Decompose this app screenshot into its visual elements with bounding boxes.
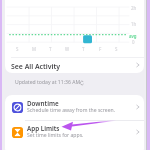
other: See All Activity <box>136 62 140 68</box>
staticText: S <box>115 46 118 52</box>
staticText: M <box>32 46 36 52</box>
staticText: W <box>65 46 70 52</box>
staticText: S <box>16 46 19 52</box>
staticText: See All Activity <box>11 62 61 71</box>
staticText: 1h <box>131 21 137 27</box>
button[interactable]: See All Activity <box>5 58 144 73</box>
staticText: App Limits <box>27 124 60 133</box>
button[interactable]: App Limits <box>5 120 144 145</box>
staticText: Updated today at 11:36 AM <box>15 79 81 86</box>
staticText: F <box>99 46 102 52</box>
staticText: Schedule time away from the screen. <box>27 107 116 114</box>
staticText: Set time limits for apps. <box>27 132 84 139</box>
staticText: avg <box>129 33 137 39</box>
staticText: Downtime <box>27 99 59 108</box>
staticText: 0 <box>132 39 135 45</box>
staticText: 2h <box>131 5 137 11</box>
button[interactable]: Downtime <box>5 95 144 120</box>
staticText: T <box>82 46 85 52</box>
staticText: T <box>49 46 52 52</box>
